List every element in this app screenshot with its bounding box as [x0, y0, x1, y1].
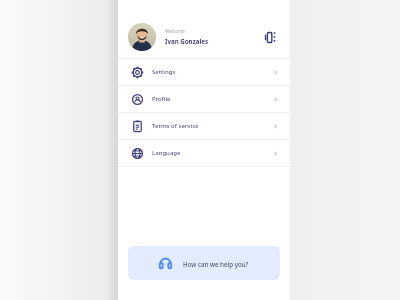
button[interactable]: Language: [118, 140, 290, 166]
button[interactable]: Settings: [118, 59, 290, 85]
button[interactable]: Welcome: [118, 15, 290, 58]
button[interactable]: Terms of service: [118, 113, 290, 139]
staticText: Profile: [152, 95, 171, 103]
button[interactable]: Scan: [260, 27, 280, 47]
staticText: How can we help you?: [183, 260, 249, 268]
button[interactable]: Profile: [118, 86, 290, 112]
button[interactable]: How can we help you?: [128, 246, 280, 280]
staticText: Welcome: [165, 28, 185, 34]
staticText: Settings: [152, 68, 176, 76]
staticText: Terms of service: [152, 122, 199, 130]
staticText: Ivan Gonzales: [165, 37, 209, 45]
staticText: Language: [152, 149, 181, 157]
